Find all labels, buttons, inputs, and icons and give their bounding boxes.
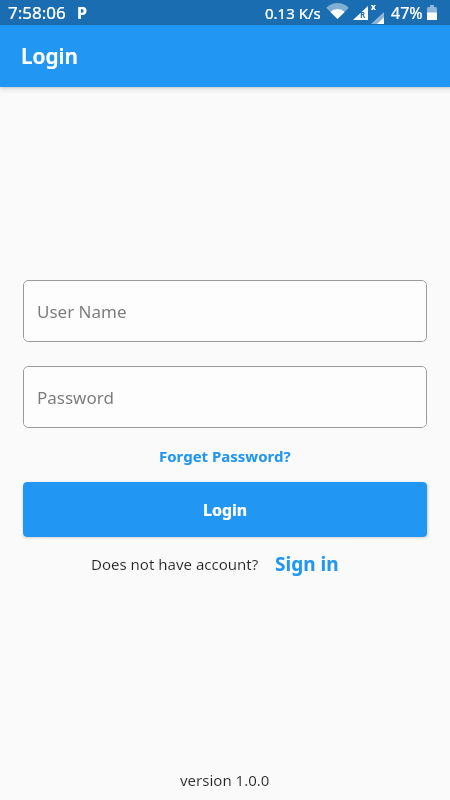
staticText: Forget Password? — [159, 446, 291, 466]
staticText: User Name — [37, 300, 127, 323]
staticText: Does not have account? — [91, 554, 259, 574]
button[interactable]: Password — [23, 366, 427, 428]
staticText: Login — [203, 499, 248, 521]
staticText: R — [360, 9, 366, 20]
staticText: Sign in — [275, 551, 339, 577]
staticText: 47% — [391, 2, 423, 24]
button[interactable]: User Name — [23, 280, 427, 342]
staticText: 0.13 K/s — [265, 3, 321, 23]
staticText: Login — [21, 42, 78, 71]
staticText: P — [77, 2, 87, 24]
staticText: version 1.0.0 — [180, 770, 270, 790]
button[interactable]: Forget Password? — [155, 442, 295, 470]
staticText: x — [371, 1, 376, 12]
button[interactable]: Login — [23, 482, 427, 537]
staticText: 7:58:06 — [8, 1, 66, 24]
button[interactable]: Sign in — [275, 551, 339, 577]
staticText: Password — [37, 386, 114, 409]
